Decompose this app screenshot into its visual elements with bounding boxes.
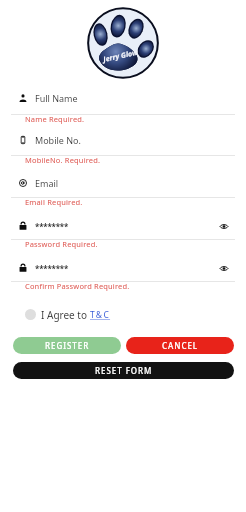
staticText: Name Required. xyxy=(25,114,85,124)
staticText: ******** xyxy=(35,263,69,274)
staticText: Full Name xyxy=(35,92,78,104)
staticText: I Agree to xyxy=(41,308,90,322)
staticText: Email Required. xyxy=(25,197,83,207)
staticText: Password Required. xyxy=(25,239,98,249)
staticText: MobileNo. Required. xyxy=(25,155,101,165)
button[interactable]: Show password xyxy=(218,262,230,274)
staticText: REGISTER xyxy=(45,340,90,351)
staticText: T&C xyxy=(90,309,111,321)
staticText: Confirm Password Required. xyxy=(25,281,130,291)
staticText: RESET FORM xyxy=(95,365,153,376)
button[interactable]: REGISTER xyxy=(13,337,121,354)
button[interactable]: Show password xyxy=(218,220,230,232)
button[interactable]: I Agree to xyxy=(25,306,111,323)
staticText: Mobile No. xyxy=(35,134,81,146)
staticText: CANCEL xyxy=(162,340,199,351)
button[interactable]: CANCEL xyxy=(126,337,234,354)
button[interactable]: RESET FORM xyxy=(13,362,234,379)
staticText: Email xyxy=(35,177,59,189)
staticText: ******** xyxy=(35,221,69,232)
